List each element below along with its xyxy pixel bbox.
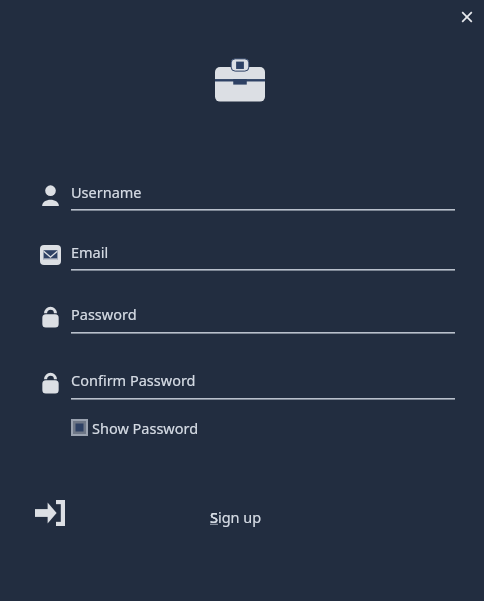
button[interactable]: Close: [452, 2, 482, 32]
staticText: Show Password: [92, 418, 199, 438]
button[interactable]: Confirm Password: [71, 366, 455, 402]
staticText: Password: [71, 304, 137, 324]
staticText: Email: [71, 242, 109, 262]
button[interactable]: Email: [71, 238, 455, 273]
button[interactable]: Show Password: [68, 416, 208, 440]
staticText: Sign up: [210, 507, 262, 527]
button[interactable]: Password: [71, 300, 455, 336]
button[interactable]: Username: [71, 178, 455, 213]
button[interactable]: Log in: [30, 496, 70, 530]
button[interactable]: S: [210, 504, 280, 530]
staticText: S: [210, 507, 218, 527]
staticText: Confirm Password: [71, 370, 196, 390]
staticText: Username: [71, 182, 142, 202]
